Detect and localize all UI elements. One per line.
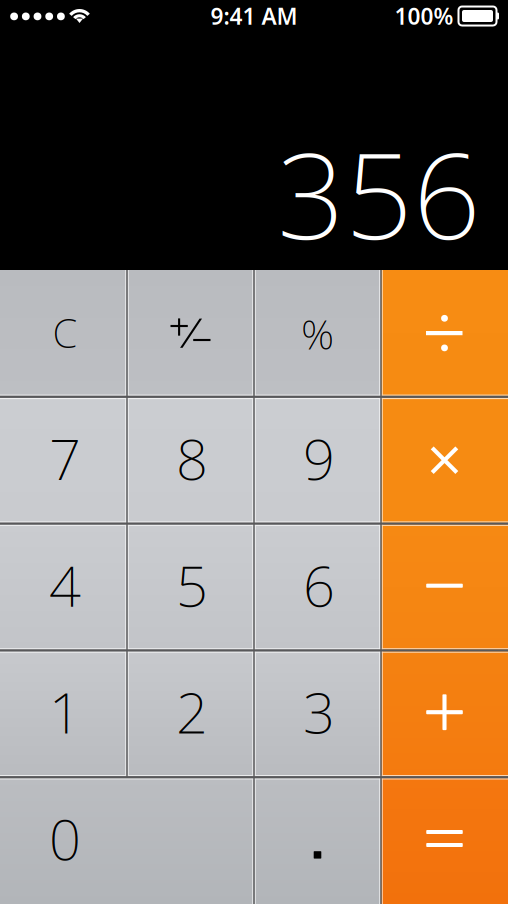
staticText: 356	[277, 114, 481, 272]
button[interactable]: 3	[254, 650, 381, 777]
staticText: 3	[303, 675, 335, 749]
button[interactable]: Divide	[381, 270, 508, 397]
staticText: C	[52, 306, 77, 359]
button[interactable]: Subtract	[381, 524, 508, 650]
button[interactable]: 7	[0, 397, 127, 524]
button[interactable]: 1	[0, 650, 127, 777]
button[interactable]: Decimal point	[254, 777, 381, 904]
button[interactable]: 0	[0, 777, 254, 904]
staticText: 9	[303, 421, 335, 495]
button[interactable]: 9	[254, 397, 381, 524]
button[interactable]: Equals	[381, 777, 508, 904]
staticText: 8	[176, 421, 208, 495]
button[interactable]: Add	[381, 650, 508, 777]
button[interactable]: Percent	[254, 270, 381, 397]
staticText: 7	[49, 421, 81, 495]
staticText: 0	[49, 801, 81, 876]
staticText: 9:41 AM	[210, 1, 297, 31]
staticText: 100%	[394, 1, 453, 31]
staticText: 6	[303, 548, 335, 622]
staticText: 1	[49, 675, 81, 749]
button[interactable]: 4	[0, 524, 127, 650]
button[interactable]: Plus minus	[127, 270, 254, 397]
button[interactable]: 6	[254, 524, 381, 650]
button[interactable]: 2	[127, 650, 254, 777]
staticText: 5	[176, 548, 208, 622]
button[interactable]: 8	[127, 397, 254, 524]
button[interactable]: Multiply	[381, 397, 508, 524]
staticText: %	[301, 306, 334, 361]
button[interactable]: 5	[127, 524, 254, 650]
staticText: 2	[176, 675, 208, 749]
button[interactable]: Clear	[0, 270, 127, 397]
staticText: 4	[49, 548, 81, 622]
